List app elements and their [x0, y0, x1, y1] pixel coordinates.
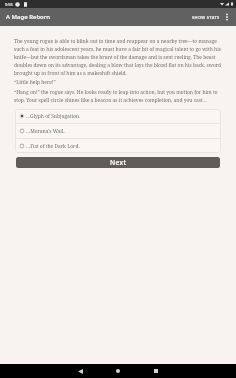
staticText: SHOW STATS	[192, 15, 220, 20]
button[interactable]: Recents	[137, 364, 175, 378]
button[interactable]: SHOW STATS	[188, 11, 220, 24]
button[interactable]: Home	[99, 364, 137, 378]
staticText: The young rogue is able to blink out in …	[14, 38, 222, 76]
button[interactable]: Next	[16, 157, 220, 168]
staticText: Next	[110, 158, 127, 167]
staticText: …Fist of the Dark Lord.	[26, 143, 80, 150]
button[interactable]: …Fist of the Dark Lord.	[15, 139, 221, 153]
staticText: …Glyph of Subjugation.	[26, 113, 81, 120]
staticText: 9:55	[5, 2, 13, 7]
staticText: “Little help here!”	[14, 79, 56, 86]
staticText: “Hang on!” the rogue says. He looks read…	[14, 89, 218, 103]
button[interactable]: More options	[220, 8, 233, 26]
button[interactable]: …Glyph of Subjugation.	[15, 109, 221, 123]
button[interactable]: Back	[61, 364, 99, 378]
staticText: …Morana's Wail.	[26, 128, 65, 135]
staticText: A Mage Reborn	[6, 13, 51, 21]
button[interactable]: …Morana's Wail.	[15, 124, 221, 138]
